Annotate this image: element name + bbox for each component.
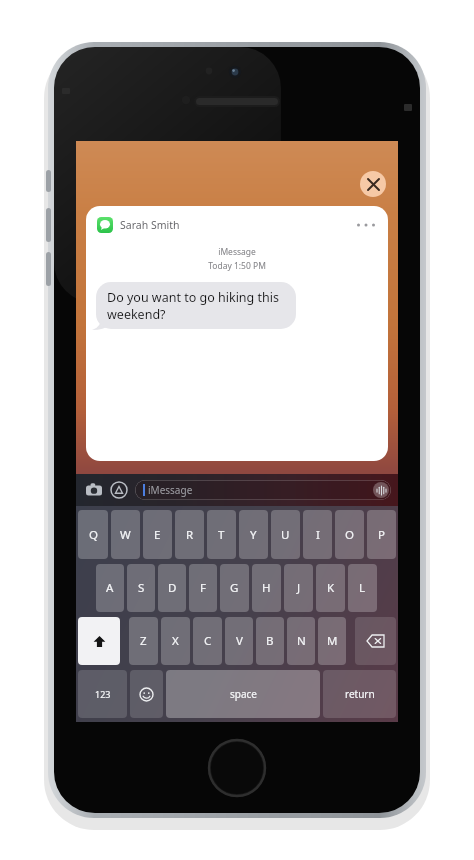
button[interactable]: H	[252, 564, 281, 612]
button[interactable]: I	[303, 510, 332, 559]
button[interactable]: Dictation	[373, 482, 389, 498]
staticText: space	[230, 687, 257, 701]
button[interactable]: G	[220, 564, 249, 612]
button[interactable]: F	[189, 564, 217, 612]
button[interactable]: App Store	[108, 479, 130, 501]
staticText: return	[345, 687, 375, 701]
staticText: E	[154, 527, 161, 543]
button[interactable]: T	[207, 510, 236, 559]
staticText: Z	[140, 633, 147, 649]
button[interactable]: More options	[355, 217, 377, 233]
staticText: C	[204, 633, 212, 649]
staticText: Do you want to go hiking this weekend?	[107, 289, 285, 322]
button[interactable]: M	[318, 617, 346, 665]
button[interactable]: return	[323, 670, 396, 718]
staticText: O	[345, 527, 354, 543]
button[interactable]: B	[256, 617, 284, 665]
staticText: X	[172, 633, 179, 649]
button[interactable]: K	[316, 564, 345, 612]
button[interactable]: 123	[78, 670, 127, 718]
staticText: P	[378, 527, 385, 543]
button[interactable]: U	[271, 510, 300, 559]
staticText: N	[297, 633, 306, 649]
button[interactable]: iMessage	[135, 480, 391, 500]
button[interactable]: E	[143, 510, 172, 559]
button[interactable]: S	[127, 564, 155, 612]
button[interactable]: C	[193, 617, 222, 665]
staticText: I	[316, 527, 320, 543]
button[interactable]: A	[96, 564, 124, 612]
staticText: U	[281, 527, 290, 543]
button[interactable]: Z	[129, 617, 158, 665]
staticText: B	[266, 633, 274, 649]
button[interactable]: W	[111, 510, 140, 559]
staticText: G	[230, 580, 239, 596]
staticText: Q	[89, 527, 98, 543]
staticText: F	[200, 580, 206, 596]
staticText: 123	[95, 688, 111, 700]
button[interactable]: L	[348, 564, 377, 612]
staticText: D	[168, 580, 177, 596]
button[interactable]: Camera	[83, 479, 105, 501]
button[interactable]: space	[166, 670, 320, 718]
button[interactable]: Sarah Smith	[86, 206, 388, 461]
button[interactable]: D	[158, 564, 186, 612]
button[interactable]: Q	[78, 510, 108, 559]
button[interactable]: N	[287, 617, 315, 665]
button[interactable]: J	[284, 564, 313, 612]
button[interactable]: X	[161, 617, 190, 665]
button[interactable]: Shift	[78, 617, 120, 665]
staticText: iMessage	[86, 246, 388, 258]
staticText: S	[138, 580, 145, 596]
staticText: K	[327, 580, 335, 596]
staticText: W	[120, 527, 131, 543]
staticText: V	[236, 633, 243, 649]
staticText: J	[297, 580, 301, 596]
staticText: Y	[250, 527, 257, 543]
staticText: M	[327, 633, 338, 649]
staticText: H	[262, 580, 271, 596]
staticText: A	[106, 580, 114, 596]
staticText: L	[359, 580, 366, 596]
staticText: iMessage	[148, 483, 193, 497]
button[interactable]: Emoji	[130, 670, 163, 718]
button[interactable]: Backspace	[355, 617, 396, 665]
staticText: Sarah Smith	[120, 218, 180, 232]
button[interactable]: R	[175, 510, 204, 559]
button[interactable]: Close	[360, 171, 386, 197]
button[interactable]: P	[367, 510, 396, 559]
staticText: T	[218, 527, 225, 543]
button[interactable]: O	[335, 510, 364, 559]
button[interactable]: V	[225, 617, 253, 665]
staticText: Today 1:50 PM	[86, 260, 388, 272]
button[interactable]: Y	[239, 510, 268, 559]
staticText: R	[186, 527, 194, 543]
